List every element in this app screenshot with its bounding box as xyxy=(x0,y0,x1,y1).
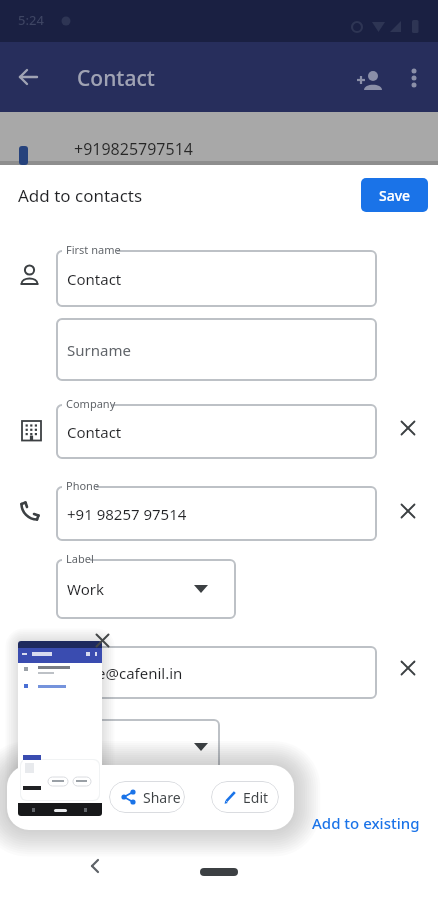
button[interactable]: +91 98257 97514 xyxy=(56,486,377,541)
staticText: First name xyxy=(66,242,121,257)
staticText: +91 98257 97514 xyxy=(67,504,187,524)
staticText: Label xyxy=(66,551,94,566)
button[interactable]: Edit xyxy=(211,781,279,813)
staticText: +919825797514 xyxy=(74,138,193,160)
button[interactable] xyxy=(396,656,420,680)
staticText: Contact xyxy=(67,269,122,289)
staticText: Surname xyxy=(67,340,131,360)
button[interactable] xyxy=(56,719,220,776)
staticText: e@cafenil.in xyxy=(97,663,183,683)
staticText: Edit xyxy=(243,788,269,807)
button[interactable]: Contact xyxy=(56,404,377,459)
button[interactable]: Surname xyxy=(56,318,377,381)
staticText: Work xyxy=(67,579,104,599)
button[interactable] xyxy=(18,641,102,816)
button[interactable]: Save xyxy=(361,178,428,212)
staticText: Phone xyxy=(66,478,100,493)
button[interactable] xyxy=(406,66,422,90)
staticText: Share xyxy=(143,788,181,807)
staticText: Add to contacts xyxy=(18,184,143,207)
button[interactable] xyxy=(396,416,420,440)
button[interactable]: Contact xyxy=(56,250,377,307)
button[interactable] xyxy=(396,499,420,523)
button[interactable] xyxy=(17,66,39,88)
staticText: Add to existing xyxy=(312,813,420,833)
button[interactable] xyxy=(56,646,377,699)
button[interactable]: Work xyxy=(56,559,236,619)
button[interactable] xyxy=(95,633,110,648)
button[interactable]: Add to existing xyxy=(288,811,420,835)
button[interactable]: Share xyxy=(109,781,185,813)
staticText: Company xyxy=(66,396,116,411)
staticText: 5:24 xyxy=(18,11,44,29)
button[interactable] xyxy=(88,858,102,874)
staticText: Contact xyxy=(77,64,155,93)
button[interactable] xyxy=(356,70,384,92)
staticText: Contact xyxy=(67,422,122,442)
staticText: Save xyxy=(379,186,411,205)
